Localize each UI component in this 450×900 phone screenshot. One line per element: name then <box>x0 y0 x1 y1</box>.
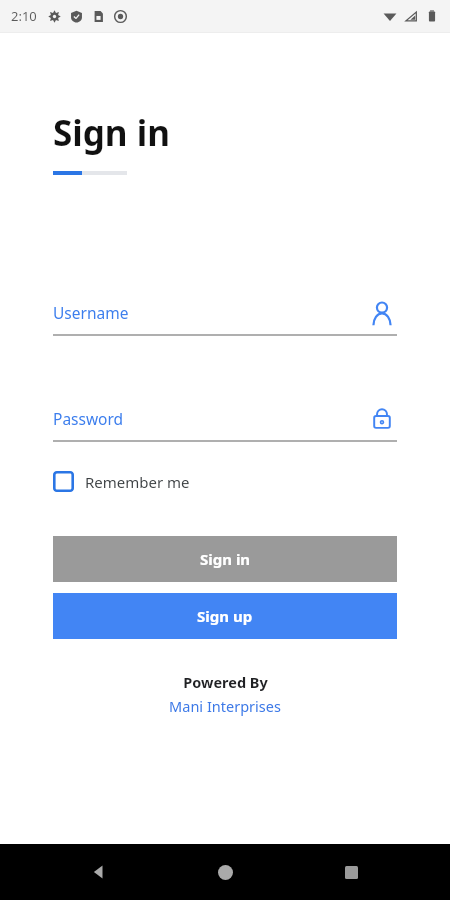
button[interactable]: Home <box>205 852 245 892</box>
button[interactable]: Back <box>79 852 119 892</box>
button[interactable]: Remember me <box>53 465 190 498</box>
staticText: 2:10 <box>11 7 37 25</box>
button[interactable]: Sign up <box>53 593 397 639</box>
staticText: Sign up <box>197 606 253 626</box>
button[interactable]: Password <box>367 403 397 433</box>
button[interactable]: Username <box>367 297 397 327</box>
staticText: Mani Interprises <box>169 696 281 716</box>
button[interactable]: Mani Interprises <box>169 696 281 716</box>
button[interactable]: Password <box>53 408 367 429</box>
staticText: Password <box>53 408 124 429</box>
staticText: Remember me <box>85 472 190 492</box>
staticText: Username <box>53 302 129 323</box>
staticText: Powered By <box>183 672 268 692</box>
staticText: Sign in <box>200 549 251 569</box>
button[interactable]: Recent apps <box>331 852 371 892</box>
button[interactable]: Sign in <box>53 536 397 582</box>
staticText: Sign in <box>53 109 170 157</box>
button[interactable]: Username <box>53 302 367 323</box>
